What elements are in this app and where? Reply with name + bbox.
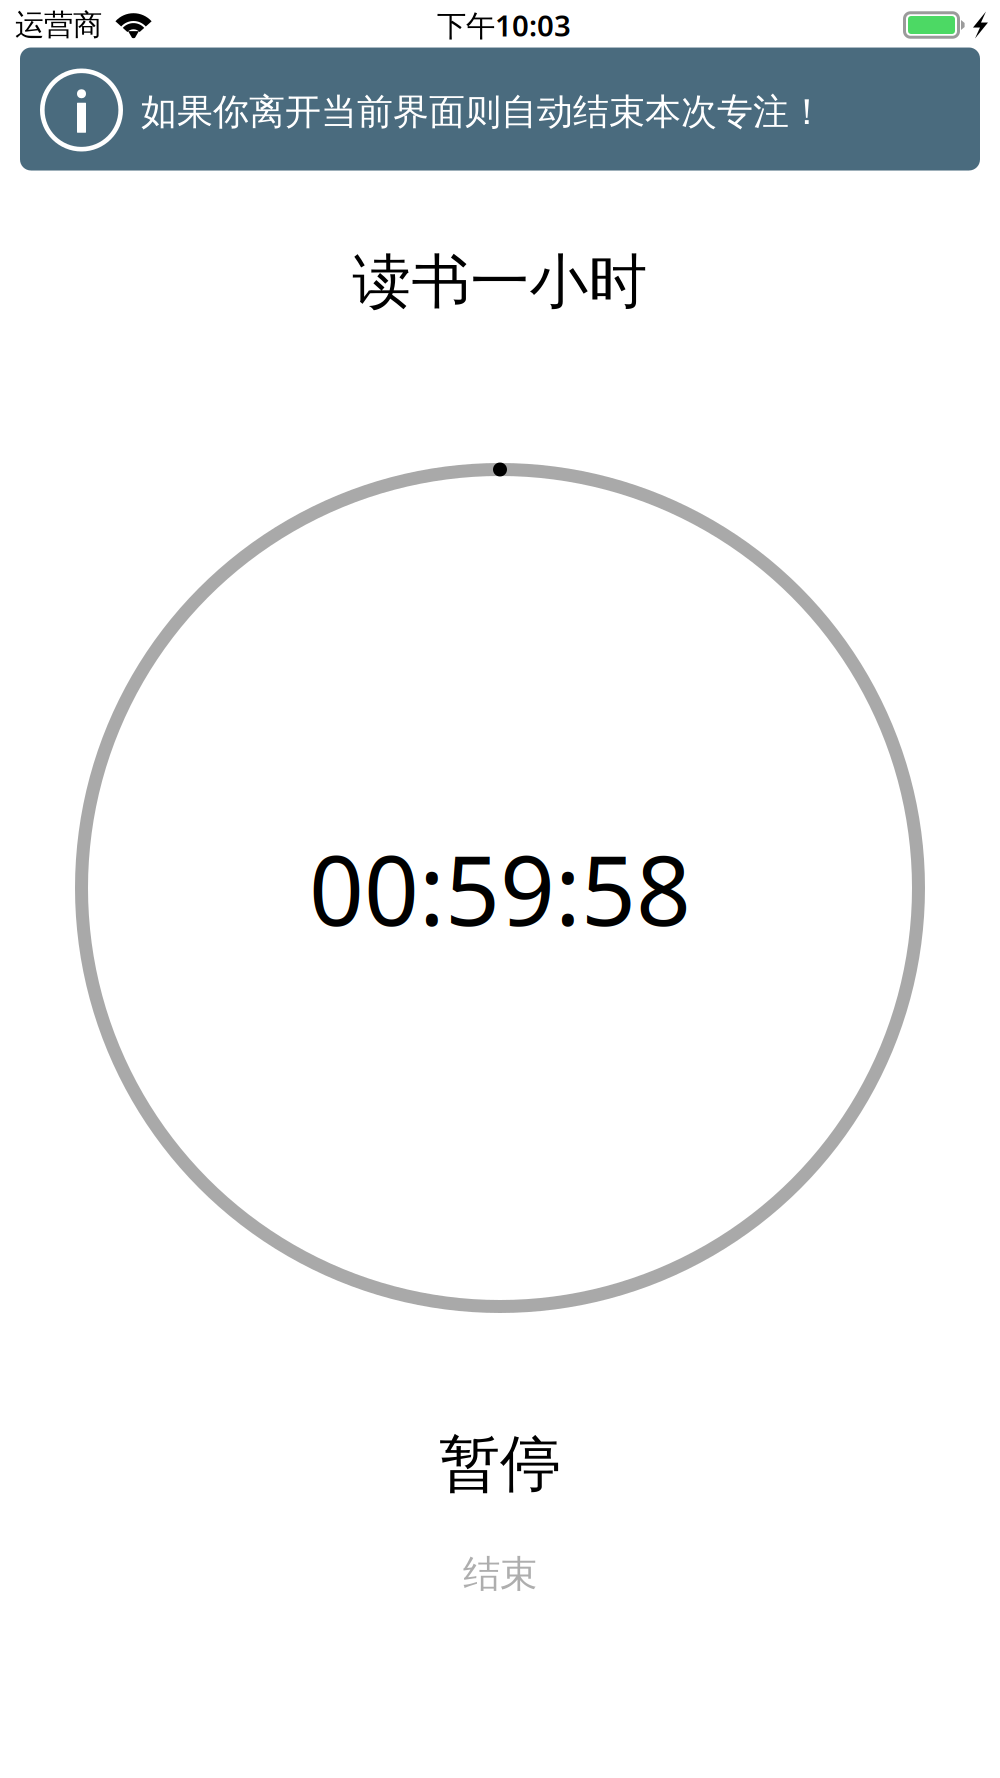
staticText: 读书一小时 — [352, 246, 647, 318]
staticText: 结束 — [463, 1551, 537, 1597]
staticText: 运营商 — [15, 7, 102, 43]
staticText: 00:59:58 — [309, 825, 691, 952]
button[interactable]: 暂停 — [360, 1414, 640, 1514]
staticText: 下午10:03 — [437, 5, 571, 44]
staticText: 如果你离开当前界面则自动结束本次专注！ — [141, 90, 825, 134]
button[interactable]: 结束 — [380, 1532, 620, 1616]
staticText: 暂停 — [439, 1426, 561, 1502]
